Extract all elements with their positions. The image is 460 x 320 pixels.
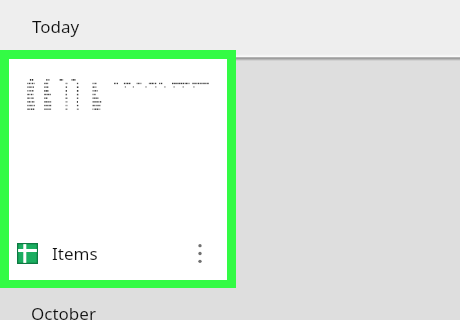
button[interactable]: More options	[186, 239, 214, 267]
staticText: Items	[52, 242, 98, 265]
button[interactable]: October	[31, 302, 96, 320]
button[interactable]: Today	[32, 15, 80, 38]
button[interactable]: Items	[9, 59, 227, 280]
